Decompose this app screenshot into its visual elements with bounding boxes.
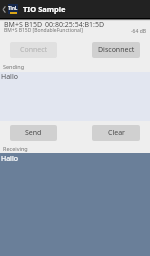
staticText: BM+S B15D	[4, 20, 43, 30]
staticText: BM+S B15D [BondableFunctional]	[4, 27, 83, 34]
staticText: Receiving	[3, 145, 28, 152]
staticText: Connect	[20, 45, 48, 55]
staticText: Disconnect	[98, 45, 135, 55]
staticText: TinL	[8, 5, 18, 11]
staticText: Send	[25, 128, 42, 138]
staticText: Sending	[3, 63, 25, 70]
button[interactable]: Back	[0, 0, 8, 18]
button[interactable]: Connect	[10, 42, 57, 58]
staticText: Hallo	[1, 154, 18, 164]
button[interactable]: Send	[10, 125, 57, 141]
button[interactable]: Clear	[92, 125, 140, 141]
staticText: TIO Sample	[23, 4, 66, 14]
staticText: -64 dB	[131, 28, 146, 35]
staticText: 00:80:25:54:B1:5D	[45, 20, 105, 30]
button[interactable]: Disconnect	[92, 42, 140, 58]
staticText: Hallo	[1, 72, 18, 82]
staticText: Clear	[108, 128, 125, 138]
